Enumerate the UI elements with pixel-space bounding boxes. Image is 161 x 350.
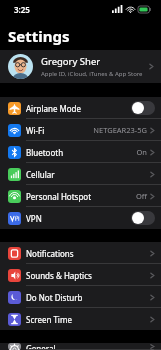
- staticText: Screen Time: [26, 314, 150, 325]
- staticText: 3:25: [14, 4, 30, 15]
- staticText: VPN: [26, 213, 131, 224]
- button[interactable]: Gregory Sher: [0, 50, 161, 83]
- button[interactable]: Cellular: [0, 163, 161, 185]
- button[interactable]: General: [0, 343, 161, 350]
- staticText: General: [26, 343, 150, 350]
- button[interactable]: Toggle: [131, 211, 155, 225]
- button[interactable]: Screen Time: [0, 308, 161, 330]
- button[interactable]: Bluetooth: [0, 141, 161, 163]
- button[interactable]: Toggle: [131, 101, 155, 115]
- button[interactable]: Notifications: [0, 242, 161, 264]
- staticText: On: [136, 147, 147, 157]
- button[interactable]: Airplane Mode: [0, 97, 161, 119]
- staticText: Settings: [8, 26, 70, 46]
- button[interactable]: Wi-Fi: [0, 119, 161, 141]
- staticText: Do Not Disturb: [26, 292, 150, 303]
- staticText: Sounds & Haptics: [26, 270, 150, 281]
- button[interactable]: VPN: [0, 207, 161, 229]
- staticText: Notifications: [26, 248, 150, 259]
- staticText: Personal Hotspot: [26, 191, 135, 202]
- staticText: Wi-Fi: [26, 125, 93, 136]
- button[interactable]: Personal Hotspot: [0, 185, 161, 207]
- staticText: Off: [135, 191, 147, 201]
- staticText: Apple ID, iCloud, iTunes & App Store: [41, 70, 143, 78]
- staticText: Cellular: [26, 169, 150, 180]
- staticText: Airplane Mode: [26, 103, 131, 114]
- staticText: NETGEAR23-5G: [93, 125, 147, 135]
- button[interactable]: Sounds & Haptics: [0, 264, 161, 286]
- staticText: Gregory Sher: [41, 55, 101, 68]
- button[interactable]: Do Not Disturb: [0, 286, 161, 308]
- staticText: Bluetooth: [26, 147, 136, 158]
